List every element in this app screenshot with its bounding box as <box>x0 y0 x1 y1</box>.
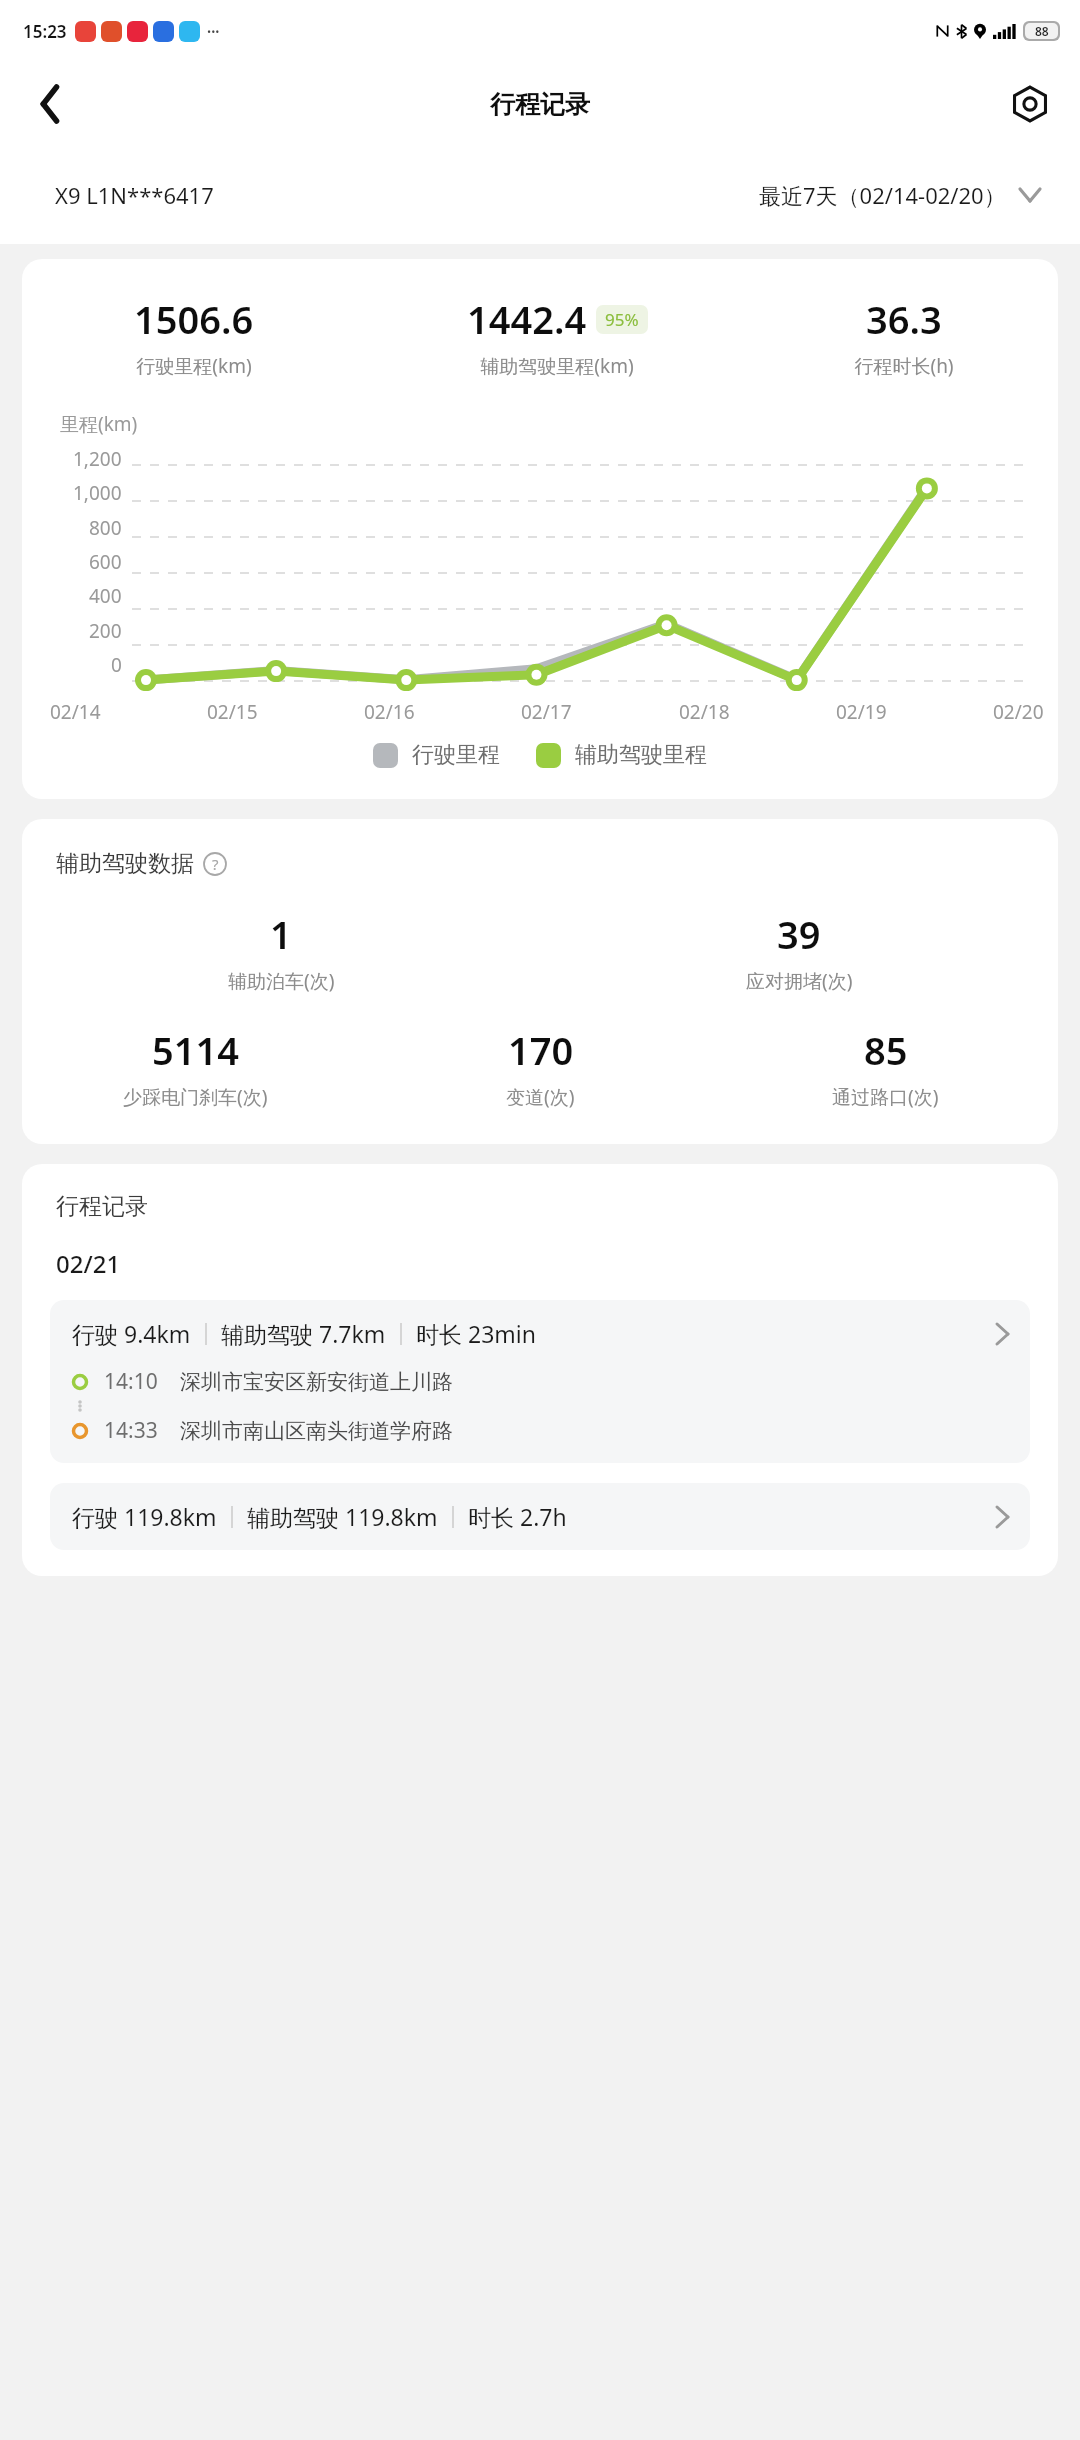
staticText: 行驶 119.8km <box>72 1501 217 1532</box>
staticText: 36.3 <box>866 293 942 345</box>
staticText: 800 <box>89 515 122 541</box>
staticText: 39 <box>777 908 821 960</box>
staticText: 02/18 <box>679 699 730 725</box>
staticText: 少踩电门刹车(次) <box>123 1084 268 1110</box>
staticText: 辅助驾驶 7.7km <box>221 1318 386 1349</box>
staticText: 时长 23min <box>416 1318 536 1349</box>
staticText: 88 <box>1035 23 1049 39</box>
staticText: 行驶里程(km) <box>136 353 252 379</box>
staticText: X9 L1N***6417 <box>55 180 214 210</box>
staticText: 95% <box>605 308 639 331</box>
button[interactable]: Help <box>202 851 228 877</box>
staticText: 辅助驾驶 119.8km <box>247 1501 438 1532</box>
staticText: 辅助驾驶里程 <box>575 741 707 769</box>
staticText: 0 <box>111 652 122 678</box>
button[interactable]: 行驶 9.4km <box>50 1300 1030 1463</box>
staticText: 400 <box>89 583 122 609</box>
staticText: 02/19 <box>836 699 887 725</box>
staticText: ••• <box>207 24 220 39</box>
button[interactable]: Back <box>22 76 78 132</box>
staticText: 170 <box>508 1024 574 1076</box>
staticText: 1 <box>270 908 292 960</box>
staticText: 行驶里程 <box>412 741 500 769</box>
staticText: 里程(km) <box>60 411 138 437</box>
button[interactable]: X9 L1N***6417 <box>0 146 1080 244</box>
staticText: 600 <box>89 549 122 575</box>
staticText: 行程记录 <box>56 1192 148 1221</box>
staticText: 辅助驾驶数据 <box>56 849 194 878</box>
staticText: 通过路口(次) <box>832 1084 939 1110</box>
staticText: 02/21 <box>56 1247 121 1280</box>
staticText: 02/16 <box>364 699 415 725</box>
staticText: 02/20 <box>993 699 1044 725</box>
staticText: 02/15 <box>207 699 258 725</box>
staticText: ? <box>212 854 219 874</box>
staticText: 深圳市南山区南头街道学府路 <box>180 1418 453 1444</box>
staticText: 行程时长(h) <box>854 353 954 379</box>
staticText: 14:33 <box>104 1416 158 1445</box>
staticText: 02/14 <box>50 699 101 725</box>
staticText: 15:23 <box>23 20 67 43</box>
staticText: 最近7天（02/14-02/20） <box>759 180 1006 210</box>
staticText: 1506.6 <box>134 293 254 345</box>
staticText: 辅助泊车(次) <box>228 968 335 994</box>
staticText: 应对拥堵(次) <box>746 968 853 994</box>
staticText: 14:10 <box>104 1367 158 1396</box>
staticText: 5114 <box>152 1024 239 1076</box>
staticText: 行驶 9.4km <box>72 1318 191 1349</box>
staticText: 85 <box>864 1024 908 1076</box>
staticText: 1,000 <box>73 480 122 506</box>
staticText: 深圳市宝安区新安街道上川路 <box>180 1369 453 1395</box>
staticText: 1,200 <box>73 446 122 472</box>
staticText: 02/17 <box>521 699 572 725</box>
staticText: 1442.4 <box>467 293 587 345</box>
staticText: 行程记录 <box>490 89 590 120</box>
staticText: 时长 2.7h <box>468 1501 567 1532</box>
staticText: 200 <box>89 618 122 644</box>
button[interactable]: Settings <box>1004 78 1056 130</box>
staticText: 辅助驾驶里程(km) <box>480 353 634 379</box>
button[interactable]: 行驶 119.8km <box>50 1483 1030 1550</box>
staticText: 变道(次) <box>506 1084 575 1110</box>
